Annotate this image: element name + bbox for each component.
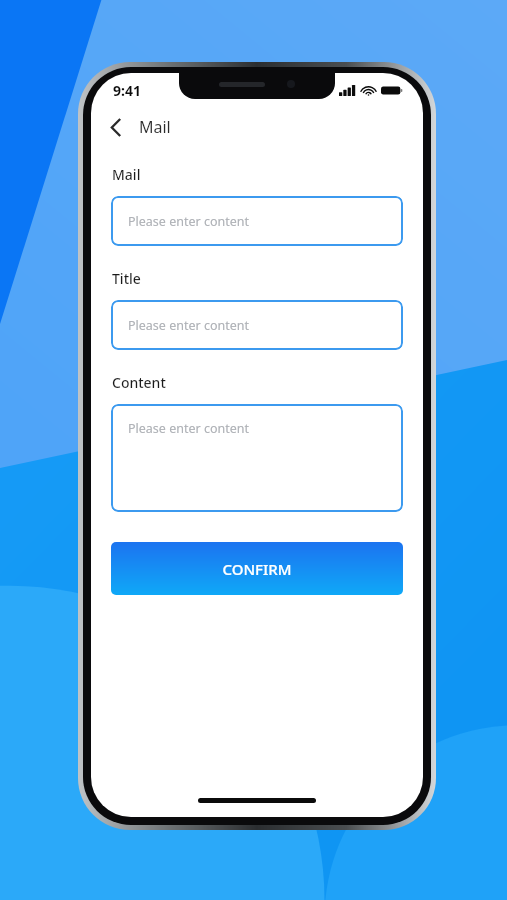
staticText: Content: [112, 373, 166, 392]
staticText: 9:41: [113, 81, 141, 100]
staticText: Please enter content: [128, 317, 249, 334]
button[interactable]: Please enter content: [111, 404, 403, 512]
staticText: Mail: [112, 165, 141, 184]
staticText: Title: [112, 269, 141, 288]
button[interactable]: CONFIRM: [111, 542, 403, 595]
staticText: Mail: [139, 116, 171, 138]
staticText: Please enter content: [128, 213, 249, 230]
staticText: CONFIRM: [222, 559, 292, 579]
button[interactable]: Please enter content: [111, 196, 403, 246]
staticText: Please enter content: [128, 420, 249, 437]
button[interactable]: Back: [99, 110, 133, 144]
button[interactable]: Please enter content: [111, 300, 403, 350]
